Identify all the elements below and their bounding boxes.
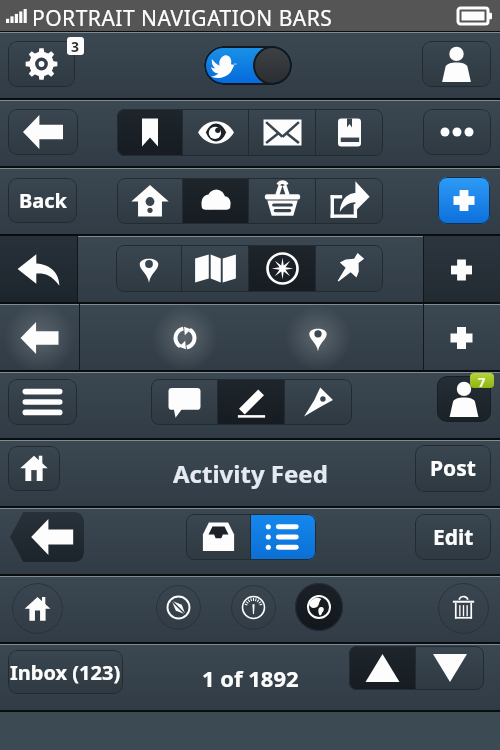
- button[interactable]: Next: [416, 646, 484, 690]
- button[interactable]: Location: [116, 245, 182, 292]
- button[interactable]: Inbox (123): [8, 650, 123, 694]
- button[interactable]: Comments: [151, 379, 218, 425]
- button[interactable]: Edit: [415, 514, 491, 560]
- button[interactable]: Back: [8, 109, 78, 155]
- button[interactable]: Profile: [437, 376, 491, 422]
- button[interactable]: Delete: [438, 583, 489, 634]
- button[interactable]: Map: [182, 245, 249, 292]
- button[interactable]: Back: [10, 512, 84, 562]
- staticText: PORTRAIT NAVIGATION BARS: [32, 4, 333, 33]
- button[interactable]: Back: [0, 304, 79, 372]
- button[interactable]: Compass: [156, 585, 201, 630]
- button[interactable]: Location: [278, 304, 358, 372]
- button[interactable]: Views: [183, 109, 249, 156]
- staticText: Post: [430, 454, 476, 483]
- button[interactable]: Explore: [249, 245, 316, 292]
- button[interactable]: Cloud: [183, 178, 249, 224]
- button[interactable]: Pin: [316, 245, 383, 292]
- button[interactable]: Library: [316, 109, 383, 156]
- button[interactable]: Reply: [0, 236, 77, 304]
- button[interactable]: Twitter toggle: [204, 46, 292, 85]
- button[interactable]: Back: [8, 178, 77, 223]
- staticText: 7: [478, 373, 486, 388]
- button[interactable]: Basket: [249, 178, 316, 224]
- button[interactable]: Add: [423, 236, 500, 304]
- button[interactable]: Home: [8, 446, 60, 491]
- staticText: Inbox (123): [10, 659, 121, 686]
- button[interactable]: Bookmark: [117, 109, 183, 156]
- button[interactable]: Settings: [8, 41, 75, 87]
- button[interactable]: Refresh: [145, 304, 225, 372]
- staticText: Activity Feed: [173, 457, 328, 490]
- staticText: Back: [19, 187, 67, 214]
- button[interactable]: Inbox: [186, 514, 251, 560]
- staticText: Edit: [433, 523, 474, 552]
- button[interactable]: Menu: [8, 379, 77, 425]
- staticText: 3: [71, 37, 80, 55]
- button[interactable]: More options: [423, 109, 491, 155]
- button[interactable]: Draw: [285, 379, 352, 425]
- button[interactable]: Add: [423, 304, 500, 372]
- button[interactable]: Profile: [422, 41, 491, 87]
- button[interactable]: Home: [12, 583, 63, 634]
- button[interactable]: Add: [438, 177, 490, 224]
- button[interactable]: Globe: [295, 583, 343, 631]
- button[interactable]: Previous: [349, 646, 416, 690]
- button[interactable]: Home: [117, 178, 183, 224]
- button[interactable]: Edit: [218, 379, 285, 425]
- button[interactable]: Post: [415, 445, 491, 492]
- button[interactable]: List: [251, 514, 316, 560]
- staticText: 1 of 1892: [202, 663, 299, 693]
- button[interactable]: Share: [316, 178, 383, 224]
- button[interactable]: Messages: [249, 109, 316, 156]
- button[interactable]: Dashboard: [231, 585, 276, 630]
